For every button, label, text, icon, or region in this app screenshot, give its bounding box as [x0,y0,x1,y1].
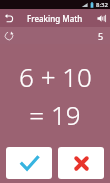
staticText: 6 + 10 [19,59,92,94]
staticText: = 19 [29,97,81,132]
staticText: 8:32 [96,1,108,9]
button[interactable]: Restart [0,27,17,44]
button[interactable]: Correct [6,147,52,179]
staticText: 5 [98,30,104,42]
button[interactable]: Wrong [58,147,104,179]
button[interactable]: Back [0,9,18,27]
button[interactable]: Sound [92,9,110,27]
staticText: Freaking Math [27,13,83,24]
